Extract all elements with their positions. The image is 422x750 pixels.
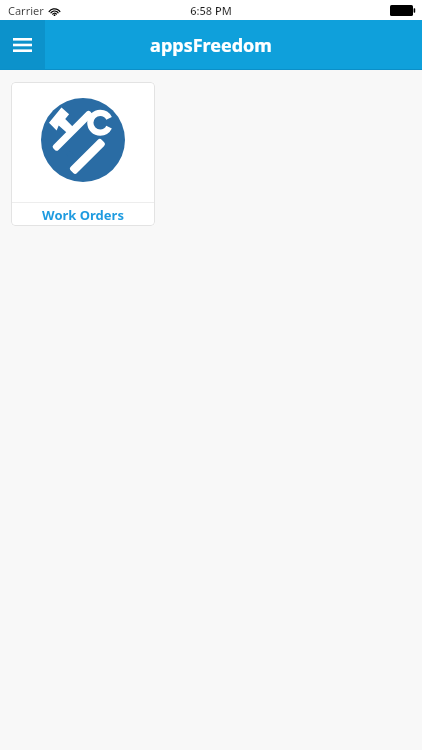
- staticText: appsFreedom: [150, 33, 272, 58]
- staticText: Carrier: [8, 3, 44, 18]
- staticText: Work Orders: [42, 206, 124, 224]
- button[interactable]: Work Orders: [11, 82, 155, 226]
- staticText: 6:58 PM: [190, 3, 232, 18]
- button[interactable]: Menu: [0, 20, 45, 70]
- other: Work Orders: [41, 98, 125, 182]
